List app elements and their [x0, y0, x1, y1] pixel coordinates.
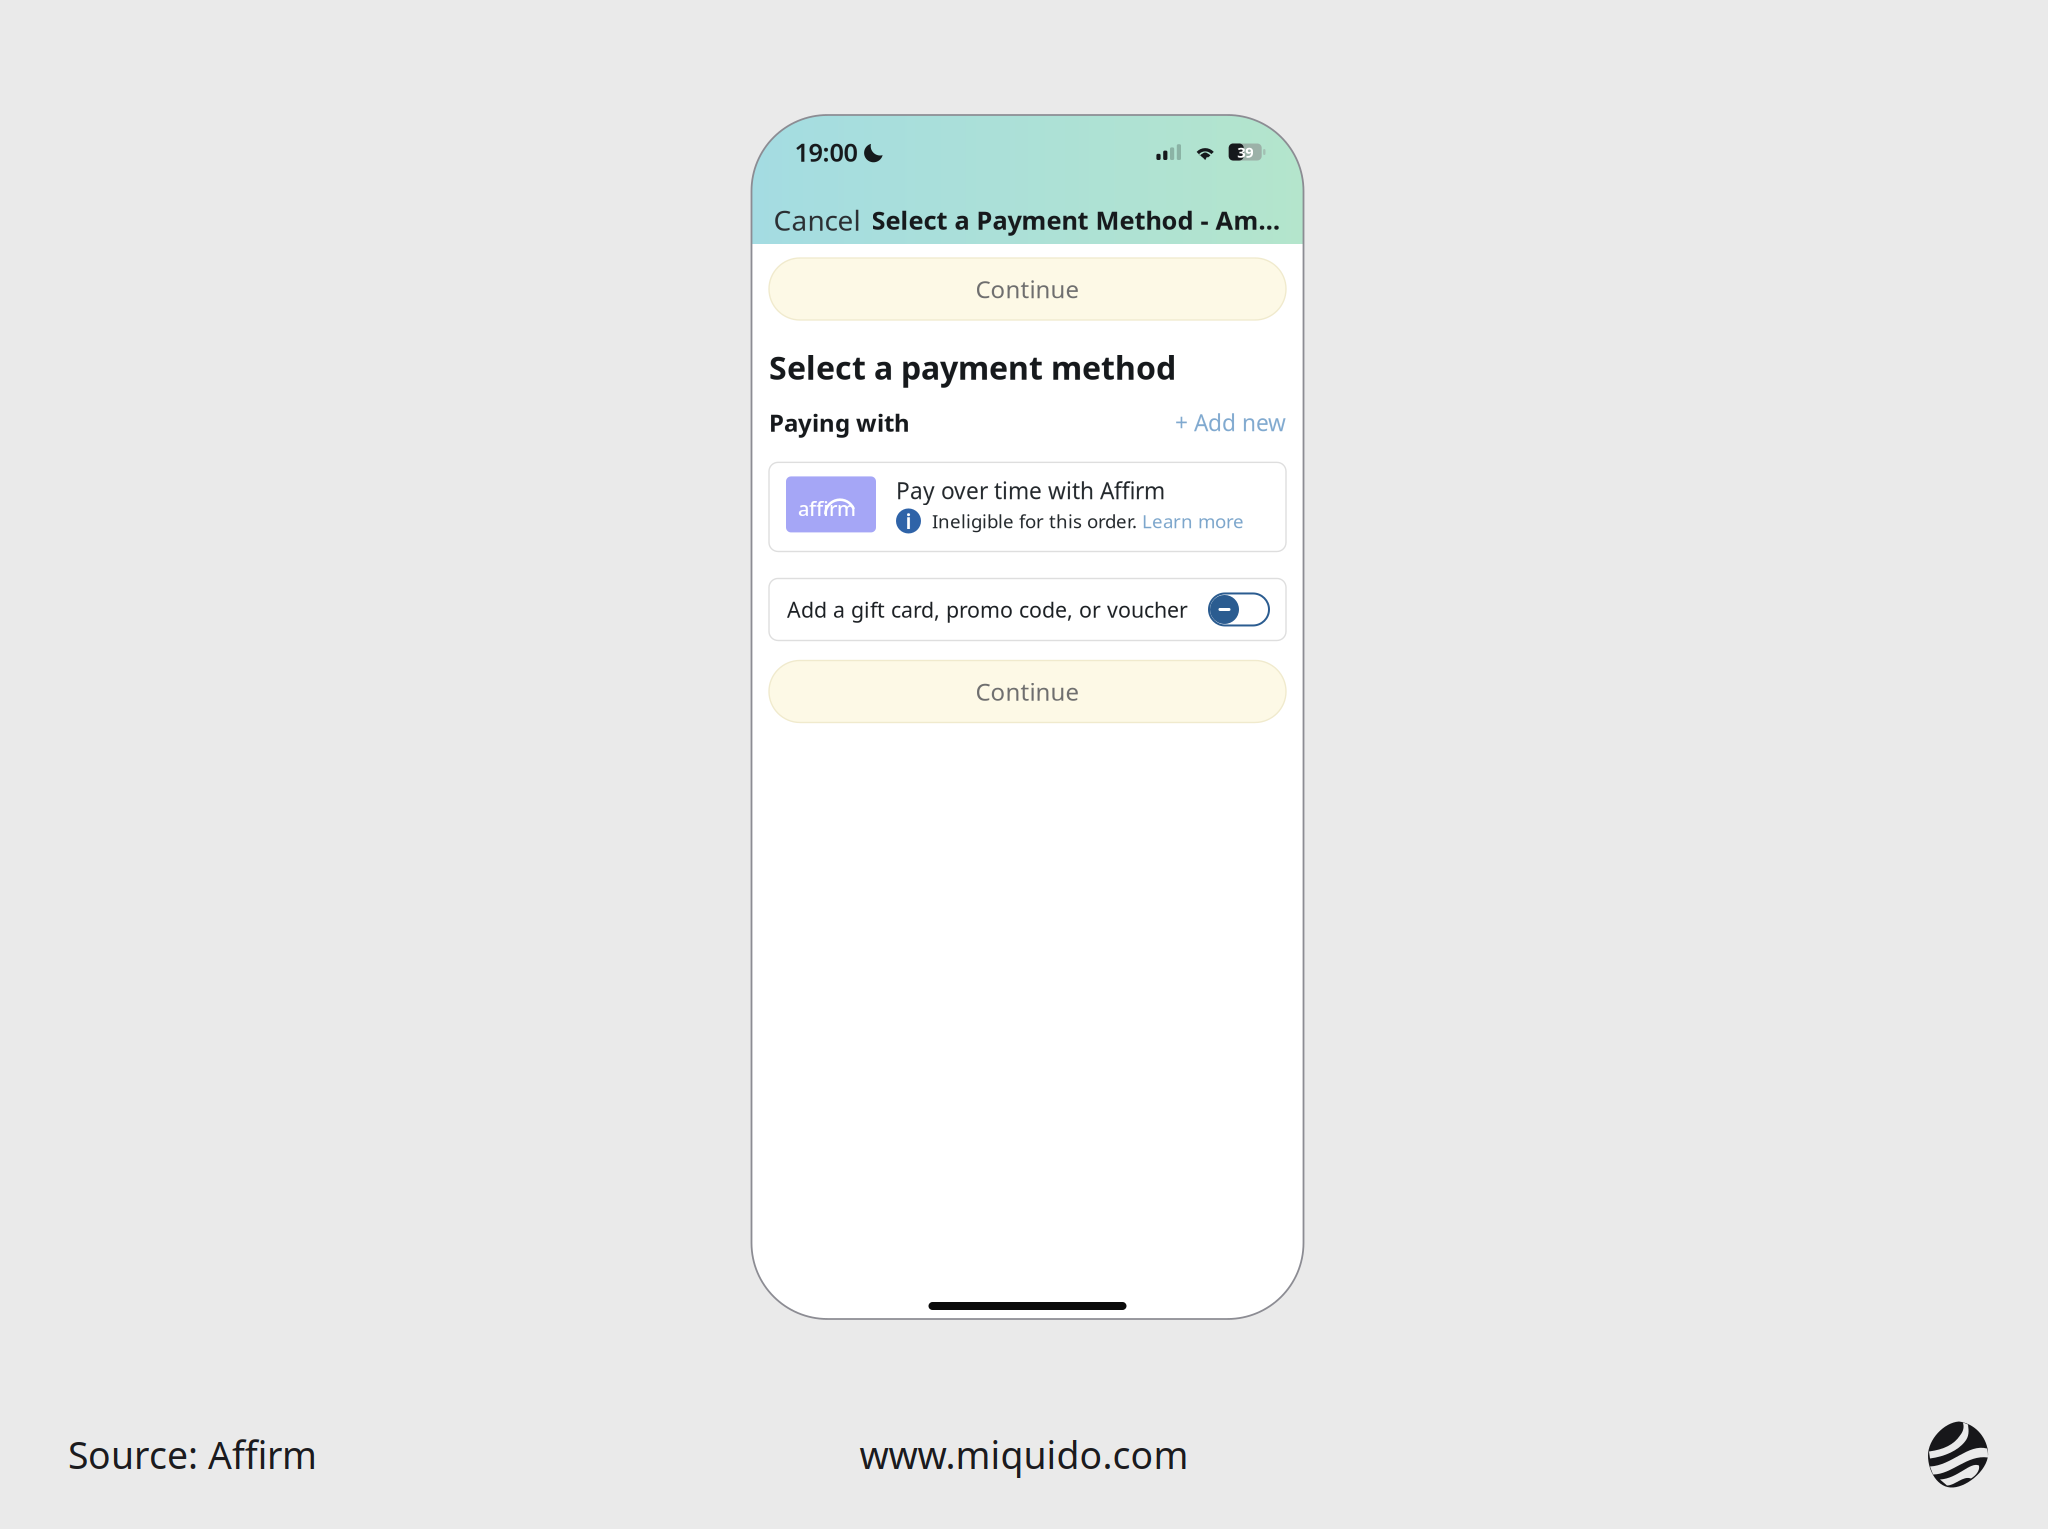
staticText: Continue: [975, 675, 1079, 707]
staticText: Learn more: [1142, 509, 1244, 533]
staticText: 39: [1237, 142, 1253, 162]
staticText: Select a payment method: [769, 346, 1176, 388]
staticText: Ineligible for this order.: [932, 509, 1137, 533]
staticText: affirm: [798, 495, 856, 521]
staticText: + Add new: [1175, 407, 1286, 437]
staticText: Cancel: [773, 201, 860, 239]
staticText: 19:00: [794, 135, 857, 169]
button[interactable]: Add a gift card, promo code, or voucher: [769, 578, 1286, 640]
staticText: Add a gift card, promo code, or voucher: [787, 595, 1188, 624]
button[interactable]: Continue: [769, 660, 1286, 722]
staticText: Pay over time with Affirm: [896, 475, 1165, 505]
staticText: www.miquido.com: [859, 1430, 1188, 1479]
button[interactable]: Continue: [769, 258, 1286, 320]
staticText: i: [905, 507, 911, 535]
staticText: Source: Affirm: [68, 1430, 317, 1479]
button[interactable]: + Add new: [1175, 407, 1286, 437]
button[interactable]: Cancel: [770, 201, 863, 239]
staticText: Select a Payment Method - Am…: [871, 203, 1280, 237]
staticText: Paying with: [769, 406, 910, 438]
button[interactable]: affirm: [769, 462, 1286, 551]
staticText: Continue: [975, 273, 1079, 305]
button[interactable]: Collapse gift card, promo code, or vouch…: [1209, 593, 1269, 625]
